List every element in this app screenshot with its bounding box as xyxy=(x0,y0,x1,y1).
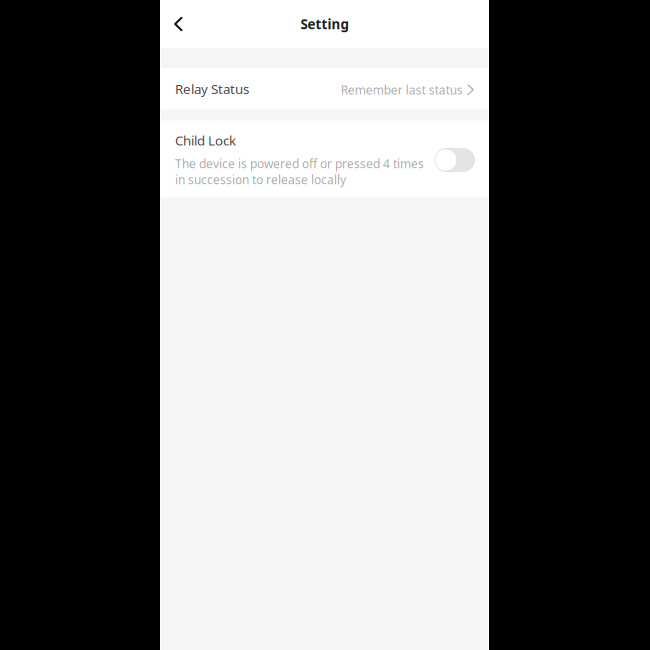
staticText: The device is powered off or pressed 4 t… xyxy=(175,156,424,188)
staticText: Relay Status xyxy=(175,80,249,98)
button[interactable]: Child Lock xyxy=(435,148,475,172)
button[interactable]: Relay Status xyxy=(160,68,489,109)
button[interactable]: Back xyxy=(160,0,197,48)
staticText: Remember last status xyxy=(341,82,463,98)
staticText: Child Lock xyxy=(175,131,236,149)
staticText: Setting xyxy=(300,15,348,33)
